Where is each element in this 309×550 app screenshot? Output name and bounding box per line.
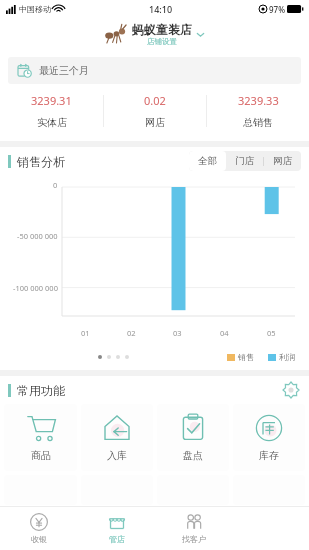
staticText: -100 000 000 — [13, 283, 58, 293]
button[interactable]: 蚂蚁童装店 — [98, 20, 211, 48]
staticText: 总销售 — [243, 116, 273, 129]
staticText: 03 — [173, 328, 182, 338]
staticText: 0 — [53, 180, 58, 190]
staticText: 网店 — [273, 155, 292, 167]
button[interactable]: 收银 — [0, 506, 78, 550]
staticText: 销售 — [238, 352, 254, 362]
staticText: 3239.33 — [238, 93, 279, 108]
button[interactable]: 0.02 — [104, 91, 206, 131]
staticText: 收银 — [31, 534, 47, 544]
button[interactable]: 盘点 — [157, 404, 229, 471]
staticText: 最近三个月 — [39, 64, 89, 77]
staticText: 蚂蚁童装店 — [132, 22, 192, 37]
staticText: 0.02 — [144, 93, 166, 108]
staticText: 中国移动 — [19, 4, 51, 14]
staticText: 全部 — [198, 155, 217, 167]
button[interactable]: Settings — [281, 380, 301, 400]
staticText: 97% — [269, 4, 285, 15]
button[interactable]: 找客户 — [155, 506, 232, 550]
staticText: 实体店 — [37, 116, 67, 129]
button[interactable]: 管店 — [78, 506, 155, 550]
button[interactable]: 3239.33 — [207, 91, 309, 131]
staticText: 01 — [81, 328, 90, 338]
button[interactable]: 入库 — [81, 404, 153, 471]
staticText: 利润 — [279, 352, 295, 362]
button[interactable]: 最近三个月 — [8, 57, 301, 84]
staticText: 04 — [220, 328, 229, 338]
button[interactable]: 3239.31 — [0, 91, 103, 131]
staticText: 14:10 — [149, 3, 173, 15]
staticText: 3239.31 — [31, 93, 72, 108]
staticText: 店铺设置 — [147, 37, 177, 46]
staticText: 门店 — [235, 155, 254, 167]
staticText: 管店 — [109, 534, 125, 544]
staticText: 库存 — [259, 449, 279, 462]
staticText: 销售分析 — [17, 154, 65, 169]
staticText: 找客户 — [182, 534, 206, 544]
staticText: 02 — [127, 328, 136, 338]
staticText: 盘点 — [183, 449, 203, 462]
staticText: 商品 — [31, 449, 51, 462]
staticText: 入库 — [107, 449, 127, 462]
button[interactable]: 库存 — [233, 404, 305, 471]
button[interactable]: 商品 — [4, 404, 77, 471]
staticText: 网店 — [145, 116, 165, 129]
button[interactable]: 门店 — [226, 151, 263, 171]
staticText: 05 — [267, 328, 276, 338]
button[interactable]: 全部 — [189, 151, 226, 171]
staticText: -50 000 000 — [17, 231, 58, 241]
button[interactable]: 网店 — [264, 151, 301, 171]
staticText: 常用功能 — [17, 383, 65, 398]
